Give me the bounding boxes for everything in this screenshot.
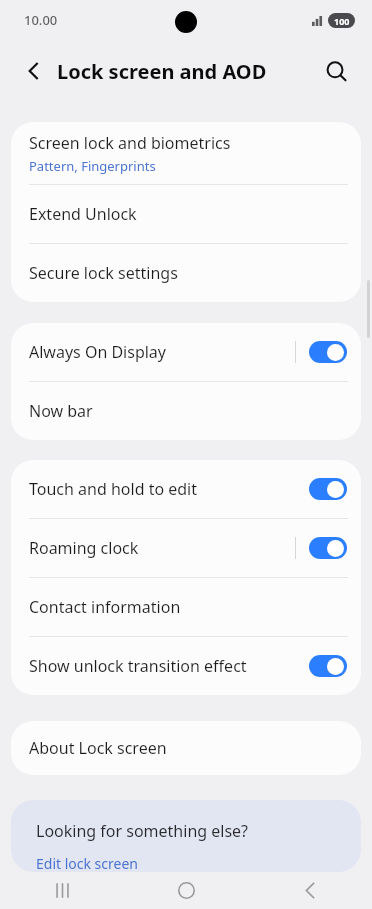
- staticText: 10.00: [24, 11, 58, 29]
- button[interactable]: Secure lock settings: [11, 244, 361, 302]
- staticText: Screen lock and biometrics: [29, 132, 231, 154]
- button[interactable]: Toggle: [309, 537, 347, 559]
- staticText: Edit lock screen: [36, 854, 138, 872]
- staticText: Pattern, Fingerprints: [29, 157, 156, 175]
- button[interactable]: Looking for something else?: [11, 800, 361, 872]
- button[interactable]: Touch and hold to edit: [11, 460, 361, 518]
- button[interactable]: Toggle: [309, 341, 347, 363]
- button[interactable]: Show unlock transition effect: [11, 637, 361, 695]
- button[interactable]: About Lock screen: [11, 721, 361, 775]
- button[interactable]: Back: [14, 51, 54, 91]
- staticText: Show unlock transition effect: [29, 655, 247, 677]
- button[interactable]: Search: [316, 51, 356, 91]
- button[interactable]: Roaming clock: [11, 519, 361, 577]
- staticText: Roaming clock: [29, 537, 139, 559]
- button[interactable]: Recent apps: [38, 872, 86, 909]
- staticText: Always On Display: [29, 341, 167, 363]
- staticText: Looking for something else?: [36, 820, 249, 842]
- button[interactable]: Toggle: [309, 655, 347, 677]
- button[interactable]: Extend Unlock: [11, 185, 361, 243]
- button[interactable]: Contact information: [11, 578, 361, 636]
- staticText: Extend Unlock: [29, 203, 137, 225]
- button[interactable]: Now bar: [11, 382, 361, 440]
- staticText: Touch and hold to edit: [29, 478, 198, 500]
- button[interactable]: Back: [286, 872, 334, 909]
- button[interactable]: Toggle: [309, 478, 347, 500]
- staticText: About Lock screen: [29, 737, 167, 759]
- button[interactable]: Home: [162, 872, 210, 909]
- staticText: Now bar: [29, 400, 93, 422]
- staticText: 100: [334, 15, 350, 27]
- staticText: Lock screen and AOD: [57, 58, 267, 85]
- button[interactable]: Screen lock and biometrics: [11, 122, 361, 184]
- staticText: Contact information: [29, 596, 181, 618]
- staticText: Secure lock settings: [29, 262, 178, 284]
- button[interactable]: Always On Display: [11, 323, 361, 381]
